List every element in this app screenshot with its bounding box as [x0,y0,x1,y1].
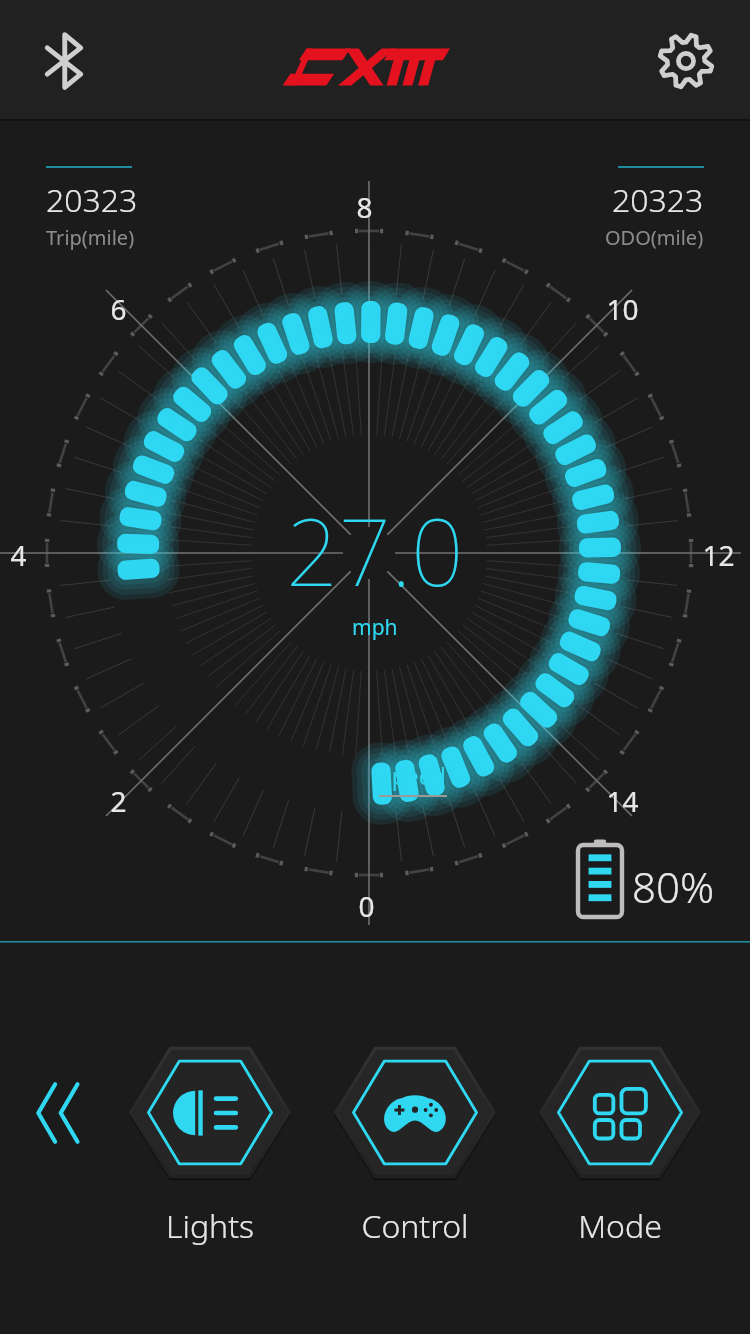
button[interactable]: Previous [0,1035,108,1190]
staticText: Speed [379,760,446,791]
staticText: 0 [358,887,375,925]
staticText: 14 [606,782,639,820]
staticText: Lights [166,1204,254,1248]
staticText: mph [352,613,398,642]
staticText: 10 [606,290,639,328]
staticText: Mode [578,1204,662,1248]
staticText: 6 [110,290,127,328]
button[interactable]: Settings [650,25,722,97]
staticText: 80% [632,858,715,915]
button[interactable]: Bluetooth [28,25,100,97]
staticText: 2 [110,782,127,820]
staticText: 20323 [46,178,138,222]
button[interactable]: Lights [108,1035,312,1248]
button[interactable]: Control [312,1035,517,1248]
staticText: 12 [702,536,735,574]
staticText: Control [361,1204,469,1248]
button[interactable]: Mode [517,1035,722,1248]
staticText: Trip(mile) [46,224,135,251]
staticText: 20323 [612,178,704,222]
staticText: 8 [356,188,373,226]
staticText: ODO(mile) [605,224,704,251]
staticText: 27.0 [286,488,464,613]
staticText: 4 [10,536,27,574]
